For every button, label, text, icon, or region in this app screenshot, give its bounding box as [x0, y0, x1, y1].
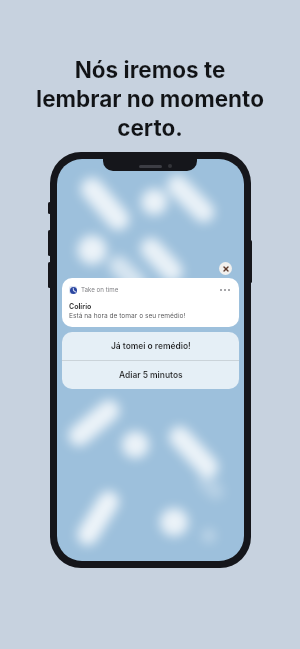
- staticText: Já tomei o remédio!: [111, 341, 191, 351]
- button[interactable]: Já tomei o remédio!: [62, 332, 239, 360]
- staticText: Adiar 5 minutos: [119, 370, 183, 380]
- staticText: Está na hora de tomar o seu remédio!: [69, 312, 186, 320]
- button[interactable]: Adiar 5 minutos: [62, 361, 239, 389]
- button[interactable]: Close notification: [219, 262, 232, 275]
- button[interactable]: Take on time: [62, 278, 239, 327]
- staticText: Take on time: [81, 286, 119, 294]
- staticText: Colírio: [69, 302, 92, 310]
- staticText: Nós iremos te lembrar no momento certo.: [4, 56, 296, 142]
